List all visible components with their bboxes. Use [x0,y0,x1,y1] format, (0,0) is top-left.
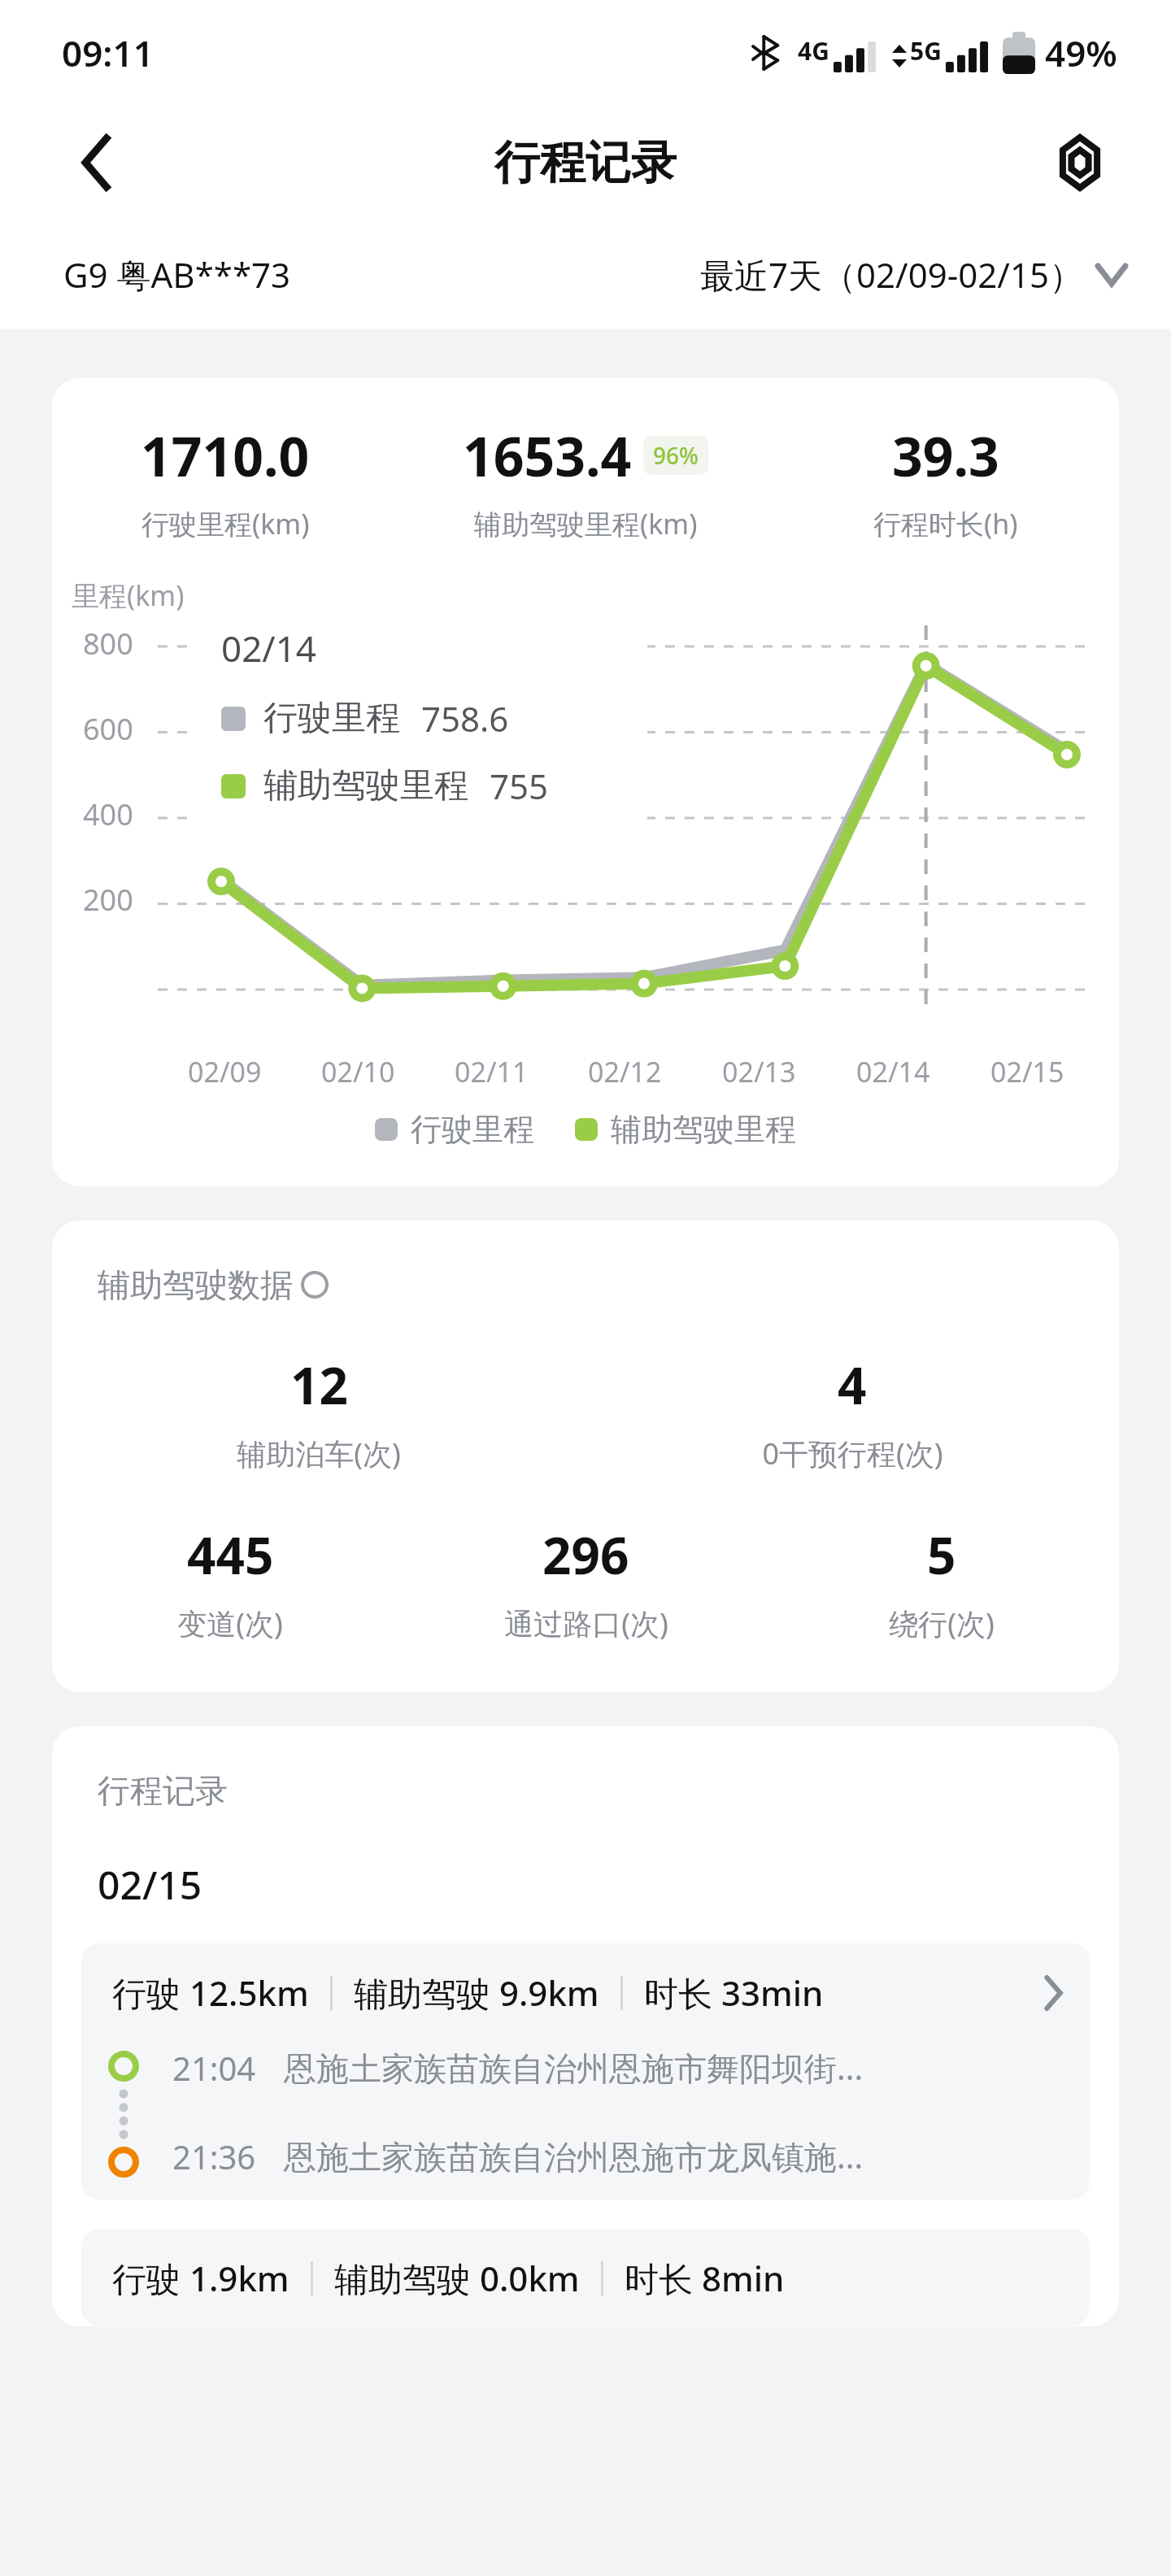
staticText: 1653.4 [463,419,632,492]
button[interactable]: 行驶 1.9km [81,2229,1090,2326]
staticText: 辅助驾驶数据 [98,1264,293,1305]
staticText: 1710.0 [141,419,310,492]
staticText: 辅助驾驶里程(km) [474,505,698,542]
staticText: 21:04 [172,2046,256,2090]
staticText: 02/10 [321,1053,395,1090]
staticText: 辅助驾驶里程 [611,1110,796,1149]
staticText: 行驶 1.9km [112,2255,289,2301]
button[interactable]: 辅助驾驶里程 [575,1110,796,1149]
staticText: 02/12 [588,1053,662,1090]
button[interactable]: 行驶里程 [375,1110,534,1149]
staticText: 09:11 [62,28,154,77]
staticText: 02/13 [722,1053,796,1090]
staticText: 200 [83,880,133,920]
staticText: 行驶里程(km) [141,505,310,542]
staticText: 时长 33min [644,1969,824,2016]
staticText: 行驶里程 [263,697,400,740]
button[interactable]: Settings [1041,124,1119,202]
staticText: 02/09 [188,1053,262,1090]
staticText: 600 [83,709,133,749]
staticText: 辅助驾驶里程 [263,764,468,807]
staticText: 21:36 [172,2134,256,2178]
staticText: 行程记录 [494,134,677,192]
staticText: 行驶里程 [411,1110,534,1149]
staticText: 行驶 12.5km [112,1969,309,2016]
button[interactable]: Back [57,124,135,202]
staticText: 39.3 [892,419,999,492]
staticText: 行程时长(h) [873,505,1018,542]
staticText: 辅助驾驶 0.0km [334,2255,580,2301]
staticText: 恩施土家族苗族自治州恩施市舞阳坝街... [284,2045,864,2090]
staticText: 02/14 [221,624,317,672]
staticText: 4 [838,1351,867,1419]
staticText: 400 [83,794,133,834]
staticText: 0干预行程(次) [762,1434,943,1473]
staticText: 绕行(次) [889,1603,995,1643]
staticText: 02/11 [455,1053,529,1090]
staticText: 800 [83,624,133,664]
staticText: 96% [653,440,699,471]
staticText: 辅助泊车(次) [237,1434,401,1473]
staticText: 02/15 [98,1858,202,1911]
staticText: 02/15 [990,1053,1064,1090]
staticText: 755 [490,763,549,809]
button[interactable]: 行驶 12.5km [81,1943,1090,2200]
staticText: 辅助驾驶 9.9km [354,1969,599,2016]
button[interactable]: 辅助驾驶数据 [98,1264,329,1305]
staticText: 4G [798,34,829,67]
staticText: 时长 8min [625,2255,785,2301]
staticText: 里程(km) [72,577,185,614]
staticText: 通过路口(次) [504,1603,668,1643]
staticText: 12 [290,1351,348,1419]
staticText: 恩施土家族苗族自治州恩施市龙凤镇施... [284,2134,864,2178]
staticText: 445 [187,1521,274,1589]
staticText: 49% [1045,28,1117,77]
button[interactable]: 最近7天（02/09-02/15） [700,251,1125,298]
staticText: 296 [542,1521,629,1589]
staticText: 5 [927,1521,956,1589]
staticText: 变道(次) [177,1603,283,1643]
staticText: 758.6 [421,695,509,742]
staticText: 5G [910,34,942,67]
staticText: 行程记录 [98,1770,228,1811]
staticText: 02/14 [856,1053,930,1090]
staticText: G9 粤AB***73 [63,251,291,298]
staticText: 最近7天（02/09-02/15） [700,251,1083,298]
